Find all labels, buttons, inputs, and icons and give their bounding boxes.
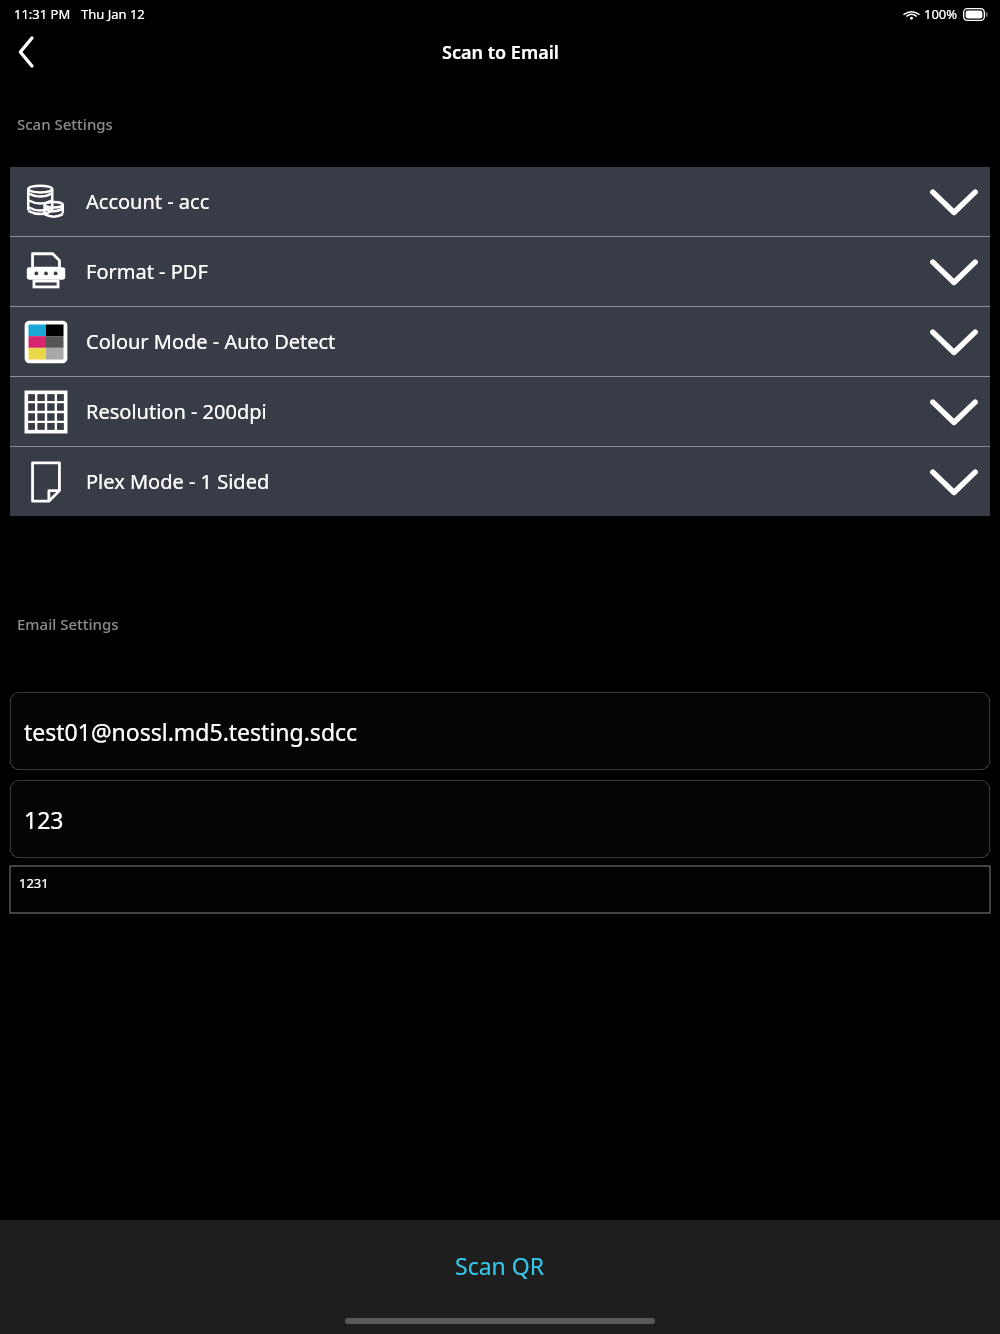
staticText: 123 <box>24 804 64 835</box>
button[interactable]: 1231 <box>10 866 990 913</box>
staticText: Plex Mode - 1 Sided <box>86 468 270 495</box>
button[interactable]: Account - acc <box>10 167 990 236</box>
staticText: Email Settings <box>17 614 119 634</box>
button[interactable]: Resolution - 200dpi <box>10 377 990 446</box>
button[interactable]: Scan QR <box>455 1250 545 1281</box>
button[interactable]: Plex Mode - 1 Sided <box>10 447 990 516</box>
button[interactable]: 123 <box>10 780 990 858</box>
staticText: Account - acc <box>86 188 210 215</box>
button[interactable]: Expand Account - acc <box>918 167 990 236</box>
button[interactable]: Expand Colour Mode - Auto Detect <box>918 307 990 376</box>
staticText: Colour Mode - Auto Detect <box>86 328 336 355</box>
staticText: test01@nossl.md5.testing.sdcc <box>24 716 358 747</box>
staticText: Thu Jan 12 <box>81 5 145 23</box>
staticText: 1231 <box>19 874 49 892</box>
button[interactable]: Expand Format - PDF <box>918 237 990 306</box>
button[interactable]: Colour Mode - Auto Detect <box>10 307 990 376</box>
button[interactable]: Expand Plex Mode - 1 Sided <box>918 447 990 516</box>
staticText: Resolution - 200dpi <box>86 398 267 425</box>
staticText: Scan to Email <box>442 40 559 65</box>
button[interactable]: Back <box>0 28 52 76</box>
staticText: Scan Settings <box>17 114 113 134</box>
staticText: Scan QR <box>455 1250 545 1281</box>
button[interactable]: Format - PDF <box>10 237 990 306</box>
button[interactable]: test01@nossl.md5.testing.sdcc <box>10 692 990 770</box>
staticText: 100% <box>924 5 958 23</box>
button[interactable]: Expand Resolution - 200dpi <box>918 377 990 446</box>
staticText: 11:31 PM <box>14 5 71 23</box>
staticText: Format - PDF <box>86 258 208 285</box>
